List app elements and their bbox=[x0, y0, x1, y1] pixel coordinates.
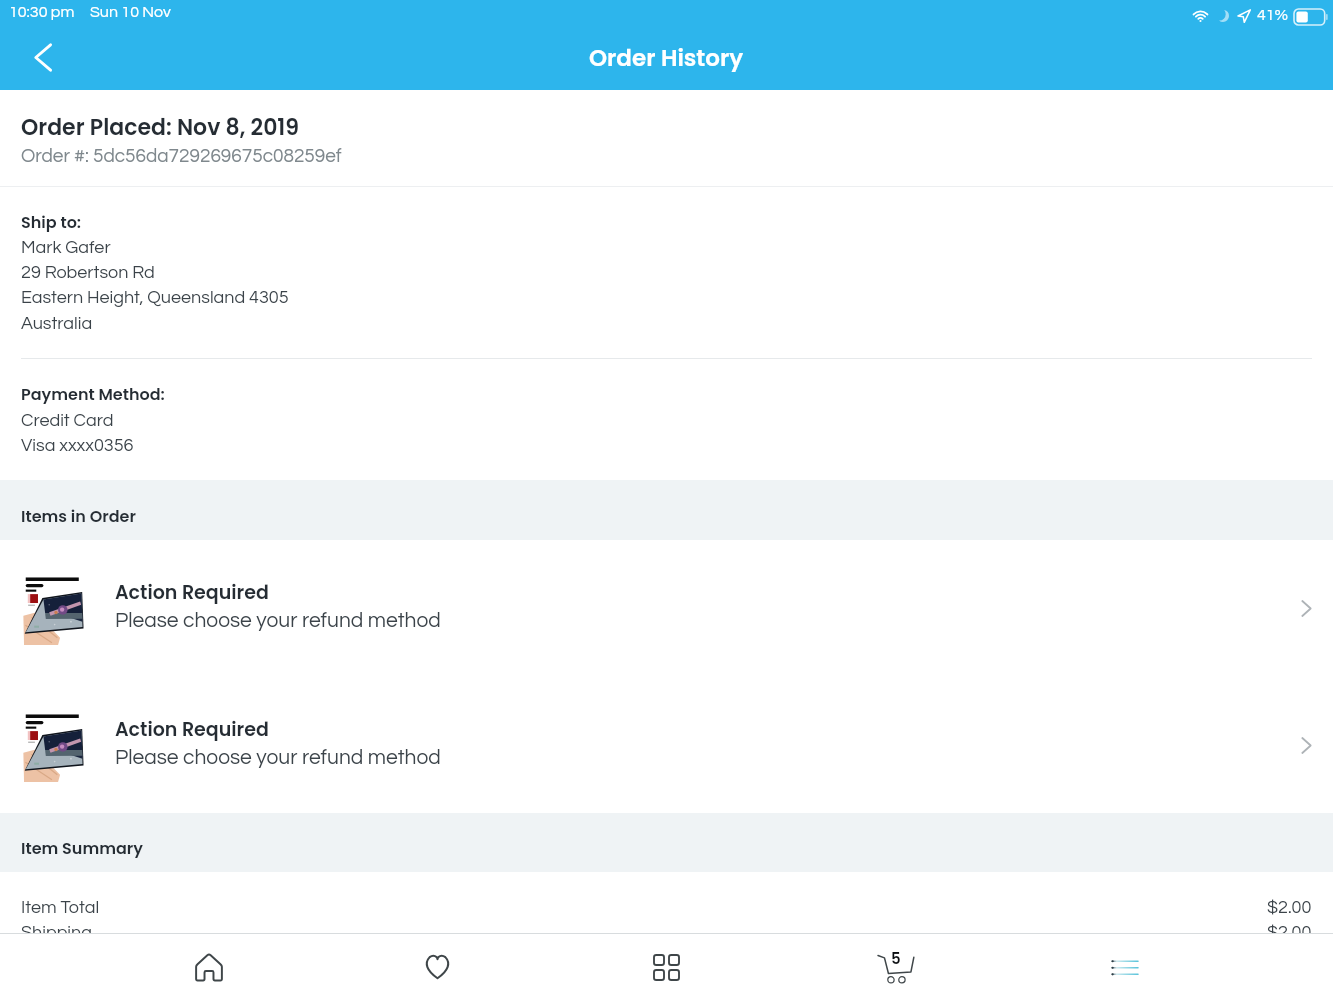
staticText: Visa xxxx0356 bbox=[21, 436, 134, 455]
staticText: Please choose your refund method bbox=[115, 610, 441, 632]
button[interactable]: Favourites bbox=[323, 934, 552, 1000]
staticText: Australia bbox=[21, 314, 93, 333]
button[interactable]: Action Required bbox=[0, 540, 1333, 677]
staticText: Action Required bbox=[115, 716, 269, 743]
staticText: $2.00 bbox=[1267, 923, 1312, 942]
button[interactable]: Categories bbox=[552, 934, 781, 1000]
staticText: Sun 10 Nov bbox=[90, 4, 171, 20]
staticText: 10:30 pm bbox=[9, 4, 75, 20]
staticText: Order #: 5dc56da729269675c08259ef bbox=[21, 146, 342, 166]
button[interactable]: Cart, 5 items bbox=[781, 934, 1010, 1000]
staticText: Ship to: bbox=[21, 211, 82, 233]
staticText: 41% bbox=[1257, 7, 1289, 23]
staticText: Order Placed: Nov 8, 2019 bbox=[21, 112, 300, 143]
staticText: Credit Card bbox=[21, 411, 114, 430]
staticText: Order History bbox=[589, 42, 744, 74]
staticText: Action Required bbox=[115, 579, 269, 606]
staticText: Shipping bbox=[21, 923, 92, 942]
staticText: $2.00 bbox=[1267, 898, 1312, 917]
staticText: Item Summary bbox=[21, 837, 143, 859]
staticText: Payment Method: bbox=[21, 383, 165, 405]
button[interactable]: Back bbox=[18, 34, 68, 80]
staticText: 29 Robertson Rd bbox=[21, 263, 155, 282]
button[interactable]: Action Required bbox=[0, 677, 1333, 814]
staticText: 5 bbox=[891, 948, 901, 969]
staticText: Please choose your refund method bbox=[115, 747, 441, 769]
button[interactable]: Menu bbox=[1010, 934, 1239, 1000]
staticText: Eastern Height, Queensland 4305 bbox=[21, 288, 289, 307]
staticText: Items in Order bbox=[21, 505, 136, 527]
staticText: Mark Gafer bbox=[21, 238, 111, 257]
staticText: Item Total bbox=[21, 898, 100, 917]
button[interactable]: Home bbox=[94, 934, 323, 1000]
